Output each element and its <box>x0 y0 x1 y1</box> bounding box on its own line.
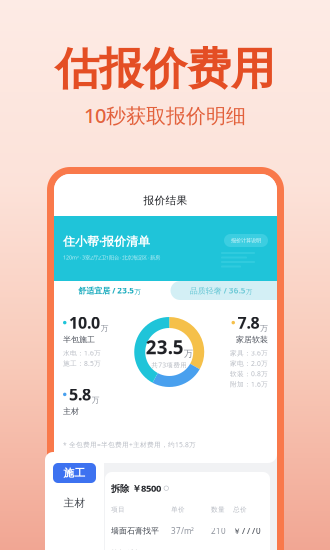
staticText: 5.8 <box>69 384 91 405</box>
staticText: 拆除 ￥8500 <box>111 482 161 494</box>
staticText: 施工 <box>63 466 85 479</box>
staticText: 210 <box>211 526 226 536</box>
staticText: 水电：1.6万 <box>63 349 101 357</box>
staticText: 墙面石膏找平 <box>111 526 159 536</box>
staticText: 半包施工 <box>63 335 95 344</box>
staticText: 10秒获取报价明细 <box>84 102 246 129</box>
staticText: 报价计算说明 <box>231 237 261 244</box>
staticText: 万 <box>134 288 141 296</box>
staticText: 家具：3.6万 <box>230 349 268 357</box>
staticText: 数量 <box>211 505 225 514</box>
staticText: 10.0 <box>69 312 100 333</box>
staticText: 品质轻奢 / 36.5 <box>190 285 246 296</box>
button[interactable]: 舒适宜居 / 23.5 <box>54 281 165 300</box>
staticText: 37/m² <box>171 526 194 536</box>
button[interactable]: 品质轻奢 / 36.5 <box>165 281 277 300</box>
staticText: 万 <box>184 348 193 359</box>
staticText: 项目 <box>111 505 125 514</box>
staticText: 报价结果 <box>143 194 187 207</box>
staticText: 7.8 <box>237 312 259 333</box>
staticText: ￥7770 <box>233 526 261 536</box>
staticText: 家居软装 <box>236 335 268 344</box>
staticText: 估报价费用 <box>55 42 275 96</box>
staticText: 单价 <box>171 505 185 514</box>
staticText: 垃圾清运 <box>111 549 143 550</box>
staticText: 主材 <box>63 496 85 509</box>
staticText: 总价 <box>233 505 247 514</box>
staticText: * 全包费用=半包费用+主材费用，约15.8万 <box>63 440 196 449</box>
staticText: 舒适宜居 / 23.5 <box>78 285 134 296</box>
staticText: 住小帮·报价清单 <box>63 233 150 249</box>
staticText: 万 <box>246 288 253 296</box>
staticText: 万 <box>260 323 268 333</box>
staticText: 万 <box>100 323 108 333</box>
button[interactable]: 施工 <box>53 463 96 483</box>
staticText: 23.5 <box>146 335 184 359</box>
staticText: 共73项费用 <box>151 360 187 369</box>
staticText: 万 <box>91 395 99 405</box>
staticText: 附加：1.6万 <box>230 380 268 388</box>
staticText: 施工：8.5万 <box>63 359 101 368</box>
staticText: 家电：2.0万 <box>230 359 268 368</box>
staticText: 软装：0.8万 <box>230 369 268 378</box>
button[interactable]: 主材 <box>53 493 96 513</box>
button[interactable]: 报价计算说明 <box>224 234 268 247</box>
staticText: 主材 <box>63 406 79 416</box>
staticText: 120m² · 3室2厅2卫1阳台 · 北京海淀区 · 新房 <box>63 254 160 261</box>
